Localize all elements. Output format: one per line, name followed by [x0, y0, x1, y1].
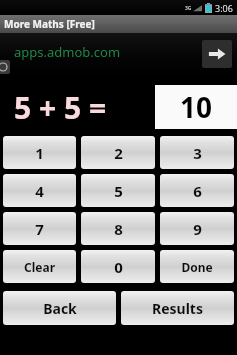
staticText: 0	[114, 257, 123, 277]
button[interactable]: 10	[155, 85, 237, 129]
button[interactable]: 7	[3, 212, 76, 245]
button[interactable]: Results	[121, 291, 234, 325]
staticText: 5	[114, 181, 123, 201]
button[interactable]: 9	[160, 212, 234, 245]
button[interactable]: Open ad	[202, 40, 232, 68]
staticText: 8	[114, 219, 123, 239]
staticText: Clear	[24, 259, 55, 275]
button[interactable]: 3	[160, 136, 234, 169]
button[interactable]: Done	[160, 250, 234, 283]
staticText: 3G	[185, 5, 192, 12]
staticText: 1	[35, 143, 44, 163]
button[interactable]: 2	[81, 136, 155, 169]
staticText: Results	[152, 299, 203, 318]
staticText: apps.admob.com	[14, 43, 121, 61]
staticText: 7	[35, 219, 44, 239]
button[interactable]: 6	[160, 174, 234, 207]
staticText: 9	[193, 219, 202, 239]
staticText: Back	[43, 299, 77, 318]
button[interactable]: 5	[81, 174, 155, 207]
button[interactable]: 4	[3, 174, 76, 207]
button[interactable]: Clear	[3, 250, 76, 283]
staticText: 10	[180, 88, 213, 126]
button[interactable]: 8	[81, 212, 155, 245]
staticText: 2	[114, 143, 123, 163]
button[interactable]: Ad info	[0, 60, 10, 74]
staticText: 3	[193, 143, 202, 163]
staticText: Done	[181, 259, 213, 275]
staticText: 4	[35, 181, 44, 201]
button[interactable]: 0	[81, 250, 155, 283]
staticText: 3:06	[215, 2, 233, 14]
staticText: 5 + 5 =	[14, 87, 107, 128]
button[interactable]: 1	[3, 136, 76, 169]
staticText: More Maths [Free]	[4, 17, 95, 31]
staticText: 6	[193, 181, 202, 201]
button[interactable]: Back	[3, 291, 116, 325]
button[interactable]: apps.admob.com	[0, 33, 237, 78]
